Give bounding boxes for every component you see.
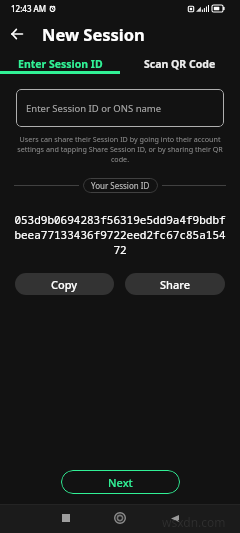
button[interactable]: Share	[125, 273, 225, 295]
staticText: Scan QR Code	[144, 57, 216, 71]
staticText: Users can share their Session ID by goin…	[16, 134, 224, 164]
button[interactable]: Recents	[54, 506, 78, 530]
button[interactable]: Enter Session ID	[0, 52, 120, 71]
button[interactable]: Back	[6, 23, 28, 45]
button[interactable]: Scan QR Code	[120, 52, 240, 71]
button[interactable]: Enter Session ID or ONS name	[16, 89, 224, 127]
staticText: Copy	[51, 277, 78, 292]
staticText: 12:43 AM	[11, 3, 47, 14]
staticText: New Session	[42, 23, 145, 45]
button[interactable]: Next	[61, 470, 180, 494]
staticText: wsxdn.com	[162, 514, 226, 530]
button[interactable]: Back	[163, 506, 187, 530]
staticText: Share	[160, 277, 190, 292]
staticText: 053d9b0694283f56319e5dd9a4f9bdbfbeea7713…	[14, 212, 226, 257]
staticText: Enter Session ID or ONS name	[26, 102, 162, 115]
staticText: Your Session ID	[91, 180, 150, 191]
staticText: Enter Session ID	[18, 57, 103, 71]
button[interactable]: Copy	[15, 273, 114, 295]
button[interactable]: Home	[108, 506, 132, 530]
staticText: Next	[108, 475, 133, 490]
